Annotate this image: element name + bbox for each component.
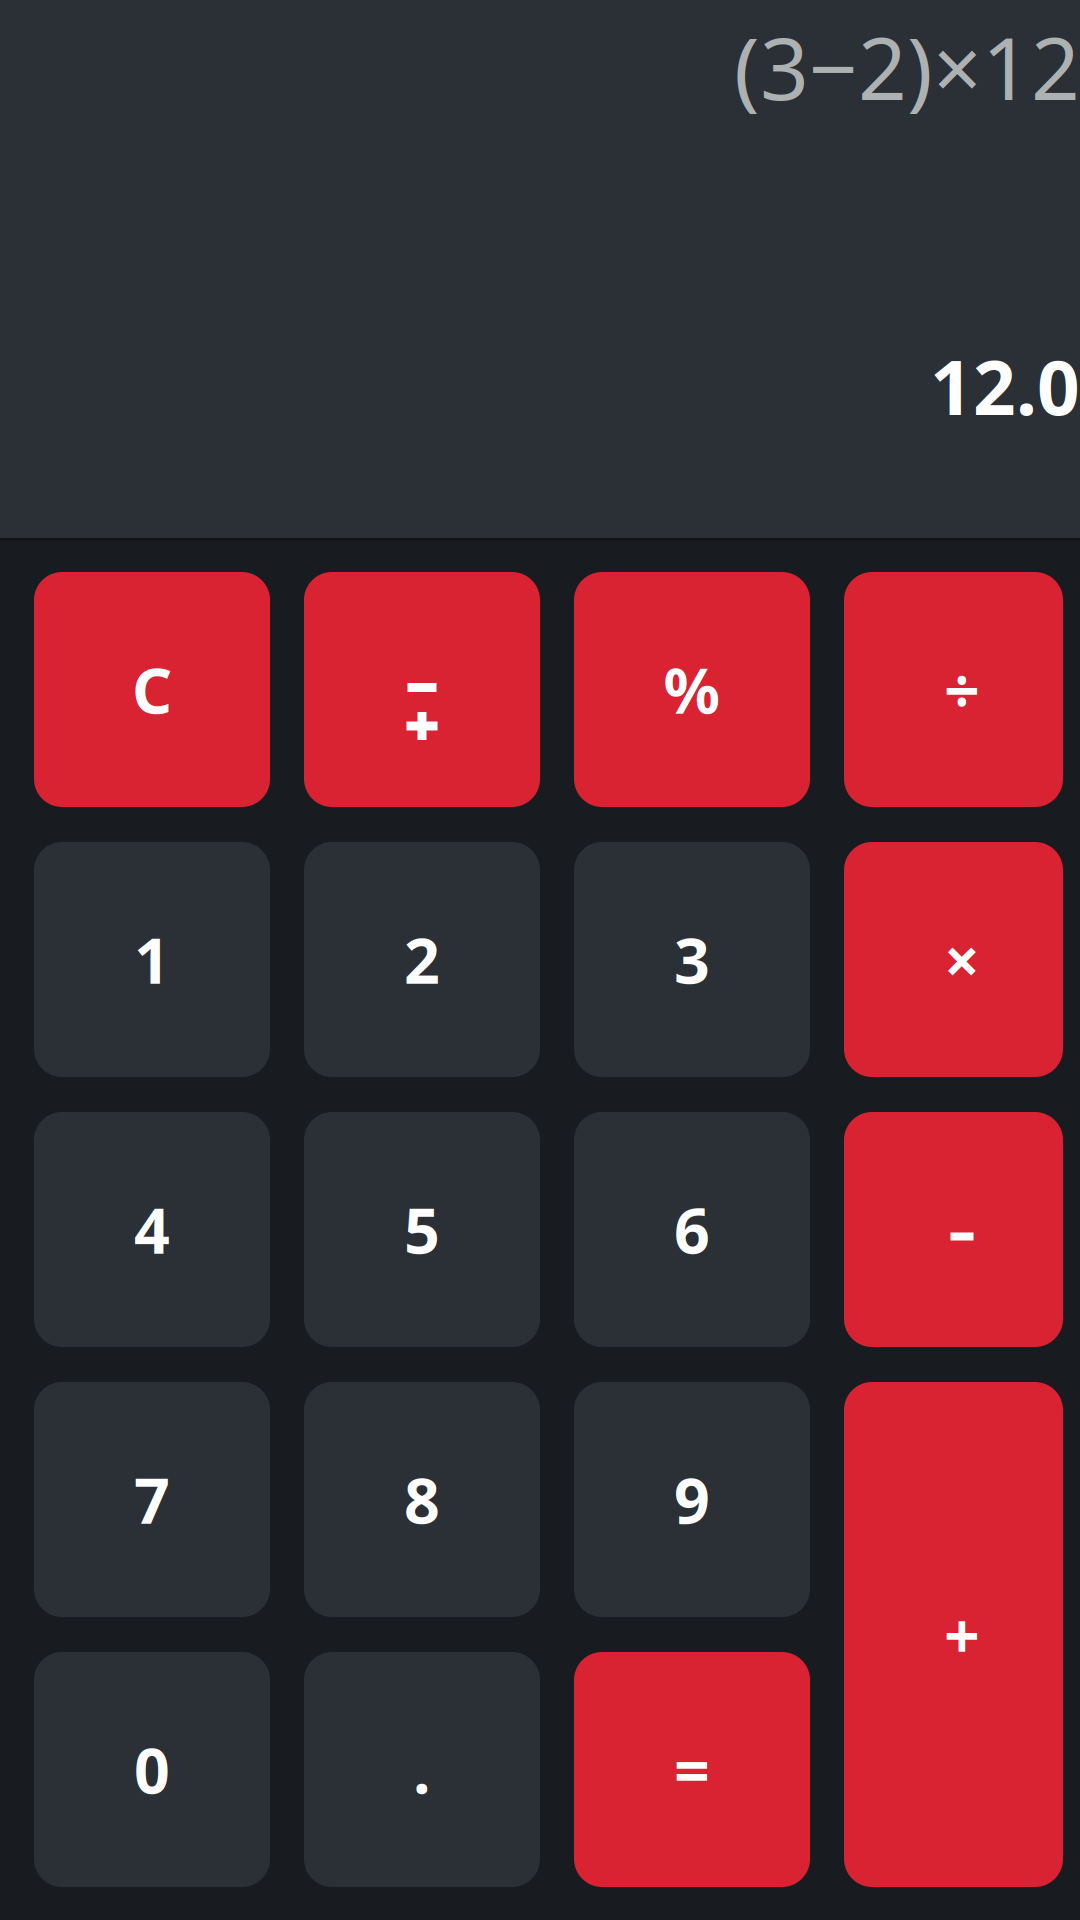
staticText: ÷ xyxy=(944,648,980,731)
staticText: 3 xyxy=(674,918,710,1001)
button[interactable]: 5 xyxy=(304,1112,540,1347)
staticText: 1 xyxy=(134,918,170,1001)
button[interactable]: Clear xyxy=(34,572,270,807)
staticText: 8 xyxy=(404,1458,440,1541)
button[interactable]: Multiply xyxy=(844,842,1080,1077)
button[interactable]: 2 xyxy=(304,842,540,1077)
button[interactable]: 7 xyxy=(34,1382,270,1617)
staticText: 9 xyxy=(674,1458,710,1541)
staticText: 5 xyxy=(404,1188,440,1271)
button[interactable]: 6 xyxy=(574,1112,810,1347)
button[interactable]: Plus or minus xyxy=(304,572,540,807)
button[interactable]: Divide xyxy=(844,572,1080,807)
button[interactable]: 1 xyxy=(34,842,270,1077)
staticText: 12.0 xyxy=(930,336,1080,436)
button[interactable]: Plus xyxy=(844,1382,1080,1887)
button[interactable]: Minus xyxy=(844,1112,1080,1347)
staticText: 6 xyxy=(674,1188,710,1271)
button[interactable]: Percent xyxy=(574,572,810,807)
staticText: C xyxy=(132,648,172,731)
staticText: 7 xyxy=(134,1458,170,1541)
button[interactable]: 0 xyxy=(34,1652,270,1887)
staticText: + xyxy=(944,1593,980,1676)
staticText: . xyxy=(413,1728,431,1811)
staticText: 0 xyxy=(134,1728,170,1811)
staticText: % xyxy=(663,648,720,731)
button[interactable]: Decimal point xyxy=(304,1652,540,1887)
staticText: 2 xyxy=(404,918,440,1001)
staticText: 4 xyxy=(134,1188,170,1271)
staticText: (3−2)×12 xyxy=(734,10,1080,124)
button[interactable]: Equals xyxy=(574,1652,810,1887)
button[interactable]: 3 xyxy=(574,842,810,1077)
staticText: × xyxy=(944,918,980,1001)
button[interactable]: 9 xyxy=(574,1382,810,1617)
button[interactable]: 8 xyxy=(304,1382,540,1617)
button[interactable]: 4 xyxy=(34,1112,270,1347)
staticText: = xyxy=(674,1728,710,1811)
